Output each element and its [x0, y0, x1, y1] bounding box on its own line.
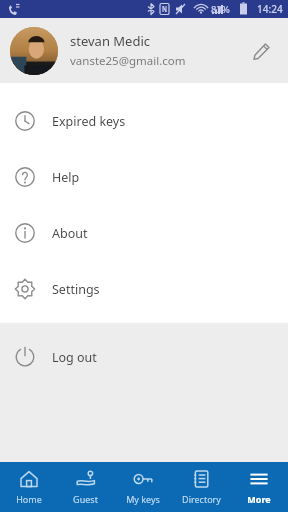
button[interactable]: Home — [0, 462, 57, 512]
staticText: 14:24 — [257, 2, 283, 16]
button[interactable]: Directory — [172, 462, 230, 512]
staticText: My keys — [126, 493, 160, 505]
staticText: stevan Medic — [70, 32, 151, 50]
button[interactable]: Guest — [57, 462, 114, 512]
button[interactable]: Log out — [0, 335, 288, 379]
staticText: Home — [16, 493, 42, 505]
staticText: vanste25@gmail.com — [70, 53, 186, 69]
staticText: Expired keys — [52, 113, 126, 130]
staticText: Log out — [52, 349, 97, 366]
staticText: 83% — [211, 3, 230, 16]
staticText: Directory — [182, 493, 221, 505]
staticText: Settings — [52, 281, 100, 298]
button[interactable]: Help — [0, 155, 288, 199]
button[interactable]: About — [0, 211, 288, 255]
staticText: More — [247, 493, 271, 505]
staticText: Guest — [73, 493, 98, 505]
staticText: Help — [52, 169, 80, 186]
staticText: About — [52, 225, 88, 242]
button[interactable]: Edit profile — [244, 34, 278, 68]
button[interactable]: stevan Medic — [0, 18, 288, 83]
button[interactable]: Settings — [0, 267, 288, 311]
button[interactable]: More — [230, 462, 288, 512]
button[interactable]: Expired keys — [0, 99, 288, 143]
button[interactable]: My keys — [114, 462, 172, 512]
